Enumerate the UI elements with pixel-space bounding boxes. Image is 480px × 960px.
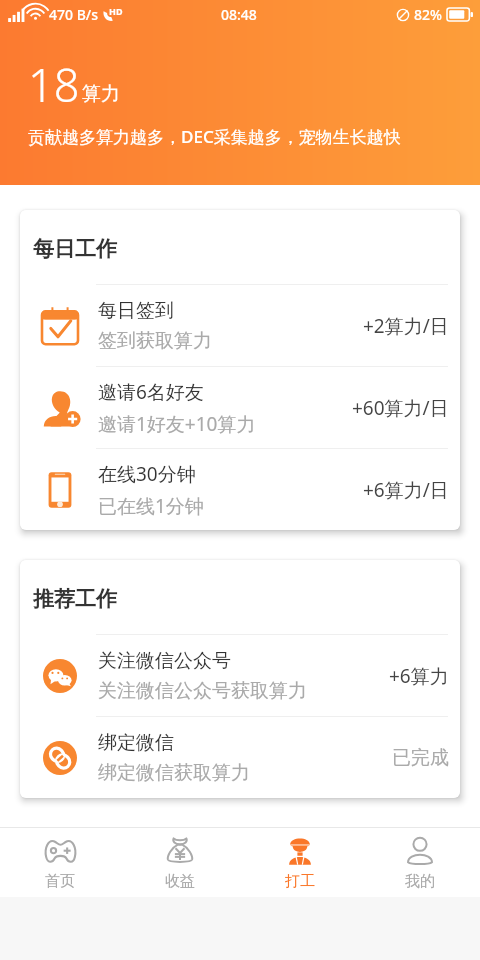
staticText: 邀请1好友+10算力: [98, 411, 256, 437]
staticText: 收益: [165, 872, 195, 891]
staticText: +60算力/日: [352, 395, 449, 421]
staticText: 邀请6名好友: [98, 379, 204, 405]
staticText: 首页: [45, 872, 75, 891]
staticText: +2算力/日: [363, 313, 449, 339]
staticText: 绑定微信获取算力: [98, 761, 250, 785]
staticText: 每日签到: [98, 299, 174, 323]
staticText: 推荐工作: [33, 586, 117, 612]
staticText: 我的: [405, 872, 435, 891]
staticText: 18: [28, 54, 80, 115]
button[interactable]: 打工: [240, 828, 360, 897]
staticText: 82%: [414, 5, 442, 24]
staticText: +6算力: [389, 663, 449, 689]
staticText: 绑定微信: [98, 731, 174, 755]
button[interactable]: 我的: [360, 828, 480, 897]
staticText: 打工: [285, 872, 315, 891]
staticText: 已在线1分钟: [98, 493, 204, 519]
staticText: 08:48: [221, 5, 257, 24]
staticText: 已完成: [392, 746, 449, 770]
staticText: 关注微信公众号: [98, 649, 231, 673]
staticText: +6算力/日: [363, 477, 449, 503]
staticText: 470 B/s: [49, 5, 99, 24]
button[interactable]: 首页: [0, 828, 120, 897]
button[interactable]: 每日签到: [20, 285, 460, 366]
staticText: 算力: [82, 82, 120, 106]
staticText: 贡献越多算力越多，DEC采集越多，宠物生长越快: [28, 125, 401, 148]
staticText: 签到获取算力: [98, 329, 212, 353]
staticText: HD: [109, 5, 123, 17]
staticText: 每日工作: [33, 236, 117, 262]
button[interactable]: 收益: [120, 828, 240, 897]
button[interactable]: 绑定微信: [20, 717, 460, 798]
button[interactable]: 关注微信公众号: [20, 635, 460, 716]
staticText: 关注微信公众号获取算力: [98, 679, 307, 703]
button[interactable]: 在线30分钟: [20, 449, 460, 530]
button[interactable]: 邀请6名好友: [20, 367, 460, 448]
staticText: 在线30分钟: [98, 461, 196, 487]
